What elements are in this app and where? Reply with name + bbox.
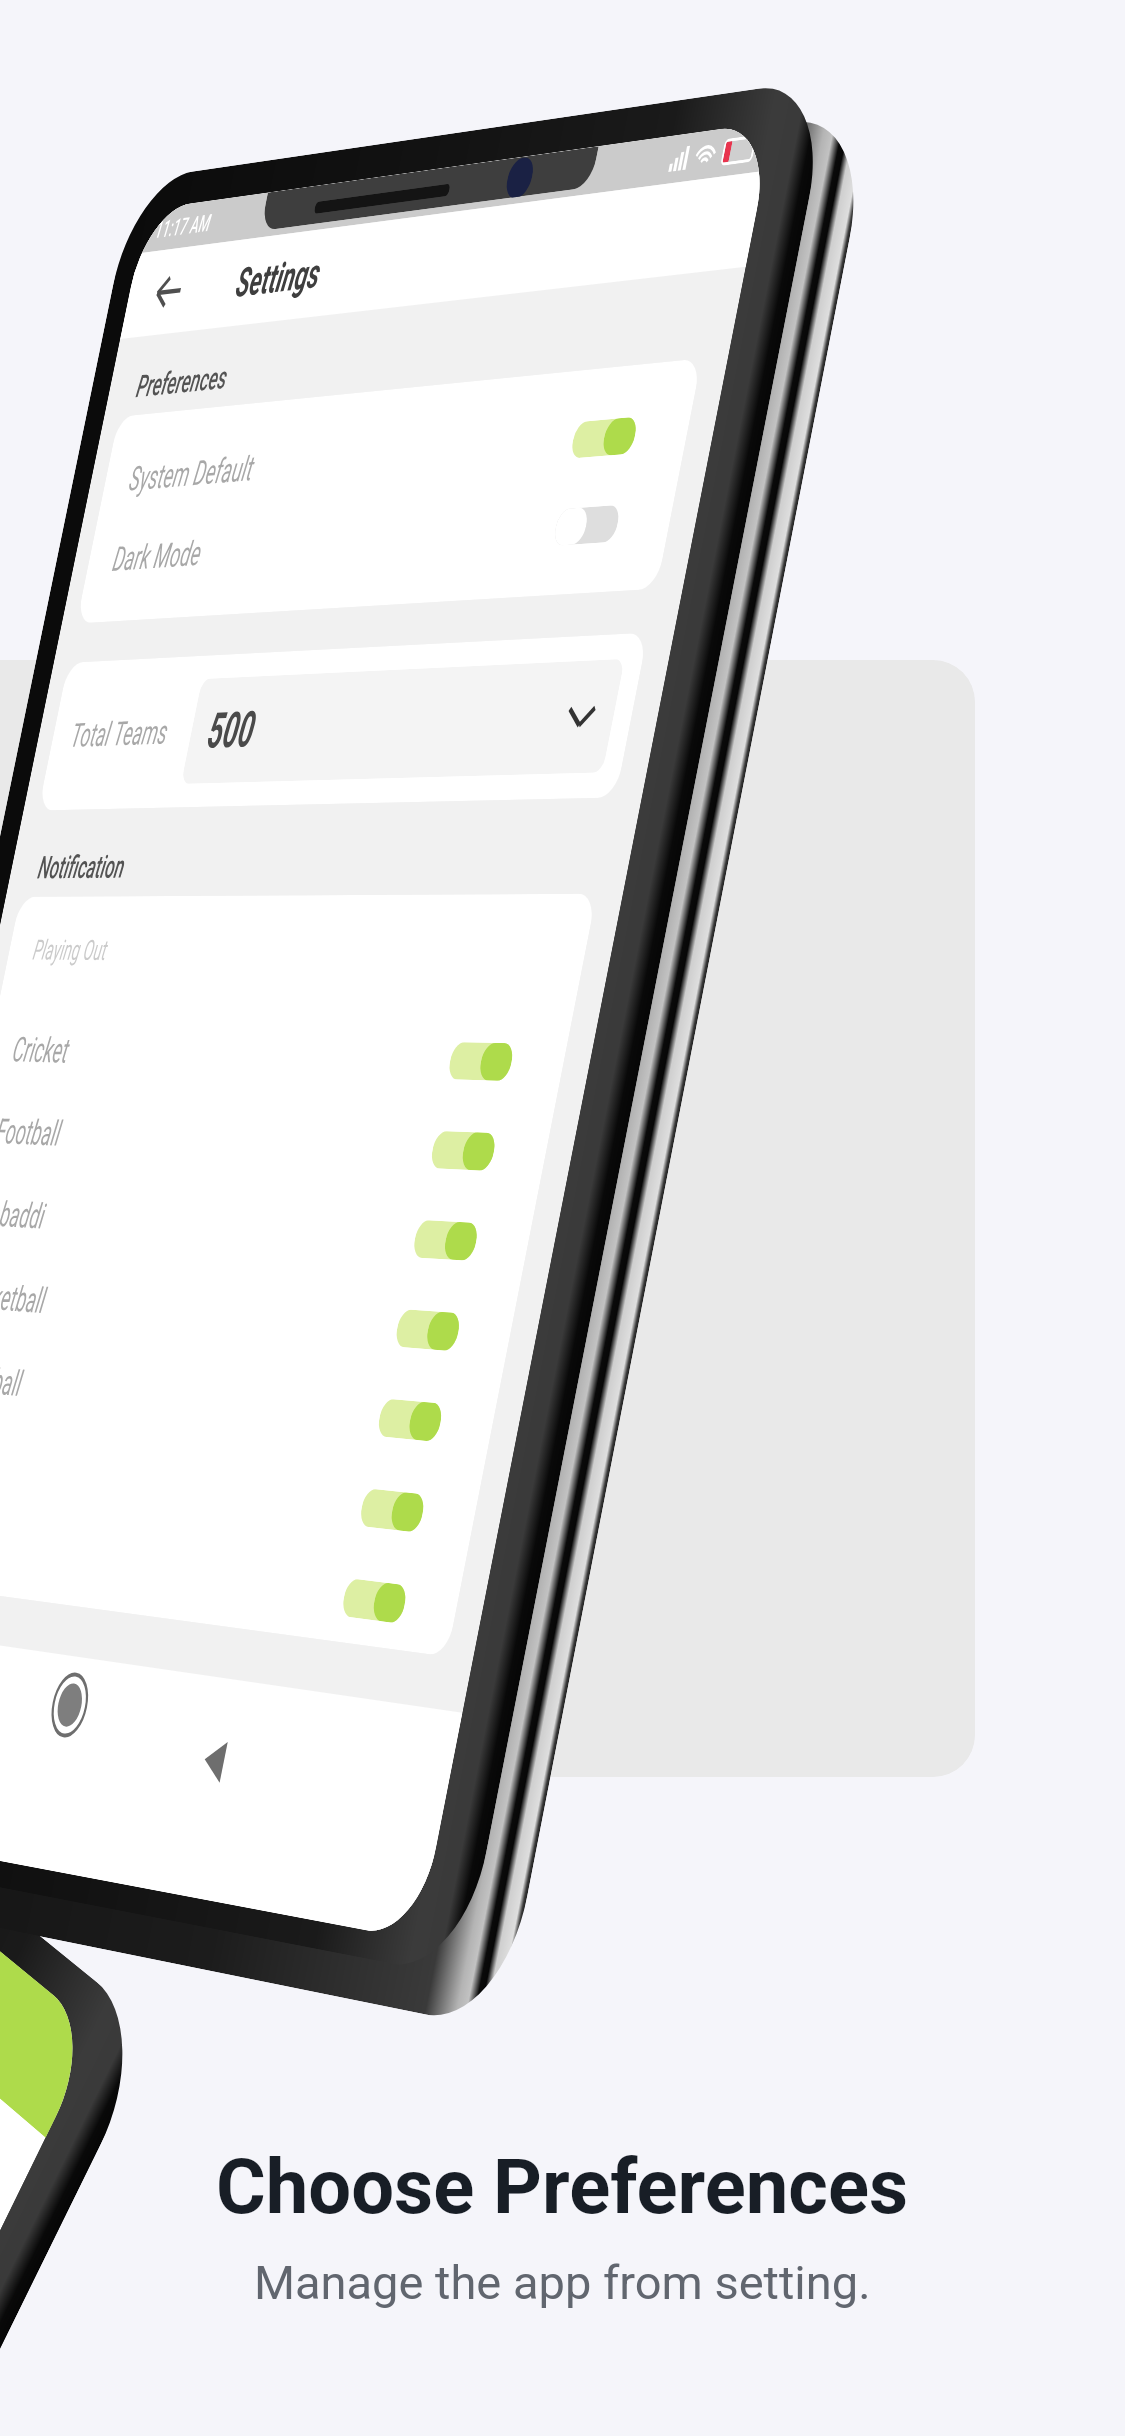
staticText: 11:17 AM: [153, 209, 213, 244]
staticText: Choose Preferences: [216, 2142, 909, 2231]
staticText: Notification: [35, 848, 129, 886]
button[interactable]: Football: [0, 1089, 555, 1199]
button[interactable]: Home: [46, 1670, 93, 1740]
staticText: 500: [203, 701, 260, 760]
button[interactable]: Volleyball: [0, 1334, 501, 1473]
staticText: Dark Mode: [110, 533, 205, 579]
button[interactable]: Back: [191, 1727, 238, 1795]
button[interactable]: Back: [144, 256, 194, 327]
button[interactable]: Tennis: [0, 1498, 465, 1657]
staticText: Basketball: [0, 1275, 50, 1322]
staticText: Settings: [232, 249, 325, 307]
staticText: Volleyball: [0, 1357, 26, 1405]
staticText: Kabaddi: [0, 1193, 49, 1237]
button[interactable]: System Default: [97, 385, 697, 521]
button[interactable]: Hockey: [0, 1415, 483, 1565]
staticText: Playing Out: [31, 934, 111, 966]
staticText: Preferences: [134, 358, 231, 404]
staticText: Football: [0, 1111, 65, 1154]
button[interactable]: Total Teams: [38, 632, 648, 811]
staticText: Manage the app from setting.: [254, 2255, 871, 2310]
button[interactable]: Cricket: [0, 1008, 572, 1108]
button[interactable]: Kabaddi: [0, 1170, 537, 1290]
button[interactable]: Dark Mode: [81, 474, 679, 601]
button[interactable]: Basketball: [0, 1252, 519, 1381]
staticText: Total Teams: [68, 713, 172, 755]
staticText: System Default: [126, 448, 257, 499]
staticText: Cricket: [9, 1030, 73, 1071]
